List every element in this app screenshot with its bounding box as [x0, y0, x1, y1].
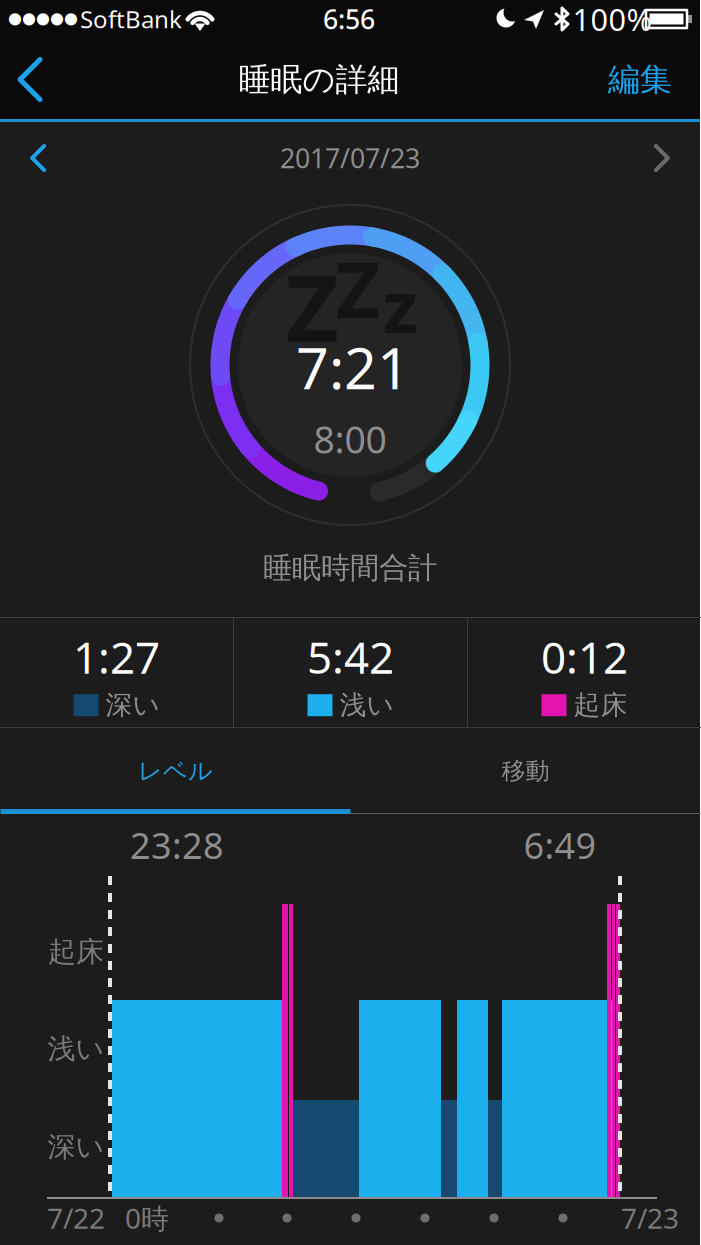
staticText: 起床 [48, 935, 104, 969]
staticText: 起床 [573, 689, 627, 722]
staticText: SoftBank [80, 3, 182, 35]
button[interactable]: 移動 [350, 728, 700, 814]
button[interactable]: 編集 [580, 40, 700, 119]
button[interactable]: レベル [0, 728, 350, 814]
staticText: 7:21 [296, 329, 410, 405]
staticText: 浅い [339, 689, 393, 722]
staticText: 23:28 [130, 821, 224, 869]
staticText: 6:56 [323, 1, 375, 37]
staticText: 編集 [608, 60, 672, 99]
staticText: 移動 [501, 756, 549, 786]
staticText: 100% [572, 0, 651, 39]
staticText: 浅い [47, 1032, 104, 1066]
staticText: Z [335, 237, 380, 339]
button[interactable]: Previous day [0, 122, 75, 194]
staticText: 7/22 [47, 1199, 105, 1237]
staticText: Z [285, 245, 338, 367]
staticText: 1:27 [73, 627, 160, 686]
button[interactable]: Back [0, 40, 58, 119]
button[interactable]: Next day [625, 122, 700, 194]
staticText: 睡眠の詳細 [238, 60, 399, 99]
staticText: 8:00 [313, 414, 386, 464]
staticText: 睡眠時間合計 [263, 550, 437, 586]
staticText: 深い [47, 1130, 104, 1164]
staticText: 深い [105, 689, 159, 722]
staticText: レベル [138, 756, 213, 786]
staticText: z [382, 257, 417, 353]
staticText: 0:12 [541, 627, 628, 686]
staticText: 5:42 [307, 627, 394, 686]
staticText: 2017/07/23 [280, 140, 420, 176]
staticText: 0時 [125, 1199, 169, 1237]
staticText: ●●●●● [8, 9, 78, 27]
staticText: 7/23 [621, 1199, 679, 1237]
staticText: 6:49 [523, 821, 596, 869]
